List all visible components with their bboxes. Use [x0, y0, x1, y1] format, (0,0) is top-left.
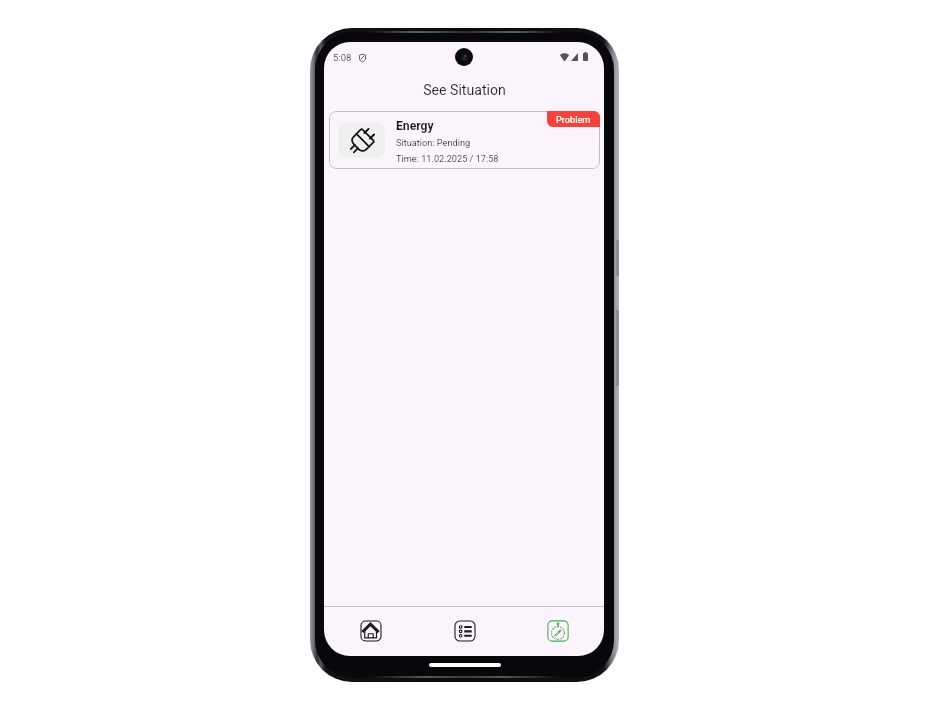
staticText: 5:08	[333, 52, 352, 63]
staticText: Problem	[556, 114, 591, 125]
button[interactable]: Problem	[547, 111, 600, 127]
staticText: See Situation	[423, 82, 506, 99]
staticText: Energy	[396, 119, 434, 133]
staticText: Time: 11.02.2025 / 17:58	[396, 153, 499, 164]
button[interactable]: List	[418, 607, 511, 656]
button[interactable]: Home	[324, 607, 418, 656]
button[interactable]: Explore	[511, 607, 604, 656]
staticText: Situation: Pending	[396, 137, 471, 148]
button[interactable]: Energy	[329, 111, 600, 169]
